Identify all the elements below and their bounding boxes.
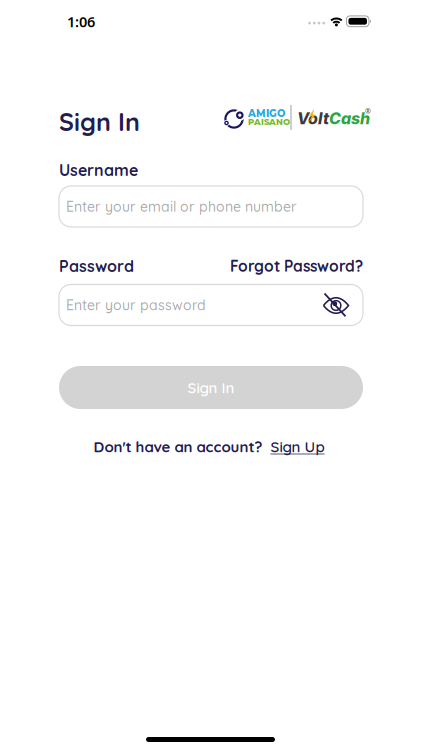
staticText: Forgot Password? — [230, 256, 363, 276]
staticText: Enter your password — [66, 296, 206, 314]
staticText: Username — [59, 160, 138, 180]
staticText: ® — [365, 106, 371, 116]
staticText: Sign In — [59, 106, 140, 137]
staticText: Sign In — [187, 378, 234, 397]
button[interactable]: Forgot Password? — [163, 256, 363, 276]
button[interactable]: Sign Up — [270, 437, 324, 456]
button[interactable]: Sign In — [59, 366, 363, 409]
staticText: PAISANO — [248, 117, 290, 127]
staticText: Volt — [297, 109, 329, 128]
button[interactable]: Enter your email or phone number — [59, 186, 363, 227]
staticText: Sign Up — [270, 437, 324, 456]
staticText: Don't have an account? — [93, 437, 262, 456]
staticText: AMIGO — [248, 107, 285, 119]
staticText: Cash — [329, 109, 370, 128]
staticText: Password — [59, 256, 134, 276]
button[interactable]: Enter your password — [59, 284, 363, 325]
staticText: Enter your email or phone number — [66, 198, 297, 215]
staticText: 1:06 — [67, 12, 95, 31]
button[interactable] — [320, 292, 352, 318]
